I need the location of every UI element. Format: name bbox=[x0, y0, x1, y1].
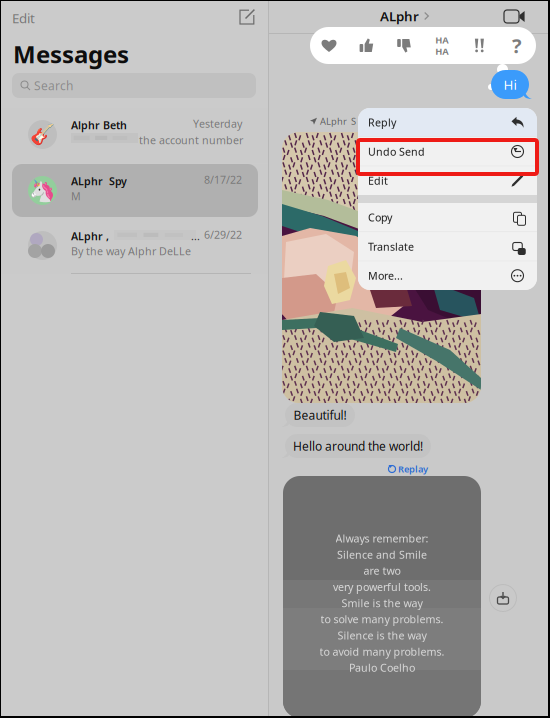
staticText: Alphr Beth bbox=[71, 118, 127, 132]
button[interactable]: Reply bbox=[358, 108, 537, 137]
staticText: 🦄 bbox=[29, 178, 56, 203]
staticText: 8/17/22 bbox=[204, 172, 242, 187]
staticText: the account number bbox=[139, 133, 243, 147]
button[interactable]: Question bbox=[498, 27, 536, 64]
staticText: M bbox=[71, 189, 81, 203]
button[interactable]: Haha bbox=[423, 27, 461, 64]
staticText: Yesterday bbox=[193, 116, 242, 131]
staticText: Undo Send bbox=[368, 144, 425, 159]
button[interactable]: Save bbox=[488, 583, 518, 613]
staticText: Always remember: bbox=[335, 531, 428, 545]
button[interactable]: Like bbox=[348, 27, 385, 64]
button[interactable]: Edit bbox=[358, 166, 537, 195]
staticText: Hi bbox=[503, 76, 516, 93]
staticText: 🎸 bbox=[30, 123, 55, 146]
staticText: Messages bbox=[13, 38, 129, 70]
staticText: HA bbox=[435, 34, 448, 46]
button[interactable]: Dislike bbox=[385, 27, 423, 64]
staticText: Translate bbox=[368, 239, 414, 254]
button[interactable]: 🎸 bbox=[0, 108, 268, 163]
staticText: Replay bbox=[398, 463, 428, 475]
staticText: ? bbox=[512, 32, 522, 59]
staticText: Silence is the way bbox=[337, 628, 426, 642]
staticText: are two bbox=[363, 564, 400, 578]
staticText: ... bbox=[191, 229, 200, 243]
staticText: ALphr S bbox=[320, 115, 356, 127]
staticText: Smile is the way bbox=[341, 596, 422, 610]
staticText: Edit bbox=[368, 174, 388, 188]
staticText: Reply bbox=[368, 115, 396, 129]
button[interactable]: 🦄 bbox=[0, 164, 268, 219]
button[interactable]: More... bbox=[358, 261, 537, 290]
staticText: to avoid many problems. bbox=[319, 644, 444, 659]
button[interactable]: Edit bbox=[12, 9, 44, 27]
button[interactable]: Replay bbox=[388, 463, 428, 475]
staticText: By the way Alphr DeLLe bbox=[71, 244, 191, 258]
button[interactable]: New Message bbox=[239, 9, 255, 25]
button[interactable]: Translate bbox=[358, 232, 537, 261]
staticText: ALphr , bbox=[71, 229, 109, 243]
staticText: Paulo Coelho bbox=[349, 661, 415, 675]
button[interactable]: Undo Send bbox=[358, 137, 537, 166]
button[interactable]: Search bbox=[12, 73, 256, 98]
staticText: Silence and Smile bbox=[337, 547, 427, 562]
staticText: Copy bbox=[368, 210, 392, 224]
staticText: Search bbox=[34, 77, 73, 93]
staticText: More... bbox=[368, 269, 403, 283]
button[interactable]: Copy bbox=[358, 203, 537, 232]
button[interactable]: Love bbox=[310, 27, 348, 64]
button[interactable]: Exclamation bbox=[461, 27, 498, 64]
button[interactable]: ALphr , bbox=[0, 219, 268, 274]
staticText: ALphr bbox=[380, 7, 419, 25]
staticText: Hello around the world! bbox=[293, 438, 423, 454]
staticText: 6/29/22 bbox=[204, 227, 242, 242]
staticText: very powerful tools. bbox=[333, 580, 431, 594]
button[interactable]: ALphr bbox=[380, 7, 429, 25]
staticText: ALphr Spy bbox=[71, 174, 127, 188]
staticText: HA bbox=[435, 45, 448, 57]
staticText: Edit bbox=[12, 9, 35, 27]
staticText: to solve many problems. bbox=[320, 612, 443, 626]
staticText: Beautiful! bbox=[293, 407, 346, 423]
button[interactable]: FaceTime bbox=[504, 9, 525, 24]
